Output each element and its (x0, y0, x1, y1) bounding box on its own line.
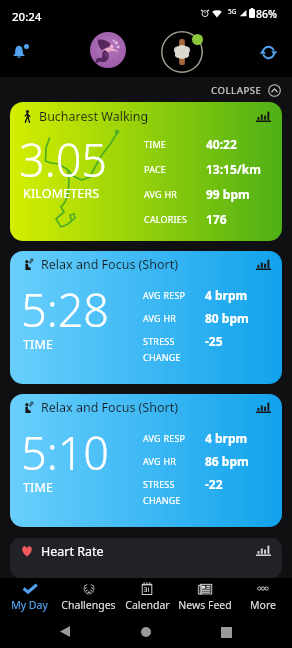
button[interactable]: More (234, 578, 292, 616)
staticText: KILOMETERS (23, 185, 100, 202)
staticText: AVG HR (143, 455, 177, 467)
staticText: 86% (256, 7, 277, 21)
staticText: More (250, 598, 276, 612)
button[interactable]: Profile avatar (90, 32, 126, 68)
other: Back (60, 626, 70, 637)
staticText: -25 (205, 333, 223, 349)
staticText: My Day (11, 598, 48, 612)
staticText: 5:10 (21, 422, 110, 483)
staticText: AVG HR (143, 312, 177, 324)
staticText: STRESS CHANGE (143, 335, 181, 364)
button[interactable]: COLLAPSE (211, 84, 281, 97)
staticText: 80 bpm (205, 310, 249, 326)
staticText: AVG RESP (143, 432, 186, 444)
staticText: 20:24 (12, 9, 42, 25)
button[interactable]: Sync (254, 38, 282, 66)
button[interactable]: Heart Rate (10, 538, 282, 578)
staticText: 176 (206, 211, 227, 227)
staticText: Bucharest Walking (39, 108, 149, 125)
staticText: TIME (144, 138, 167, 150)
staticText: AVG HR (144, 188, 178, 200)
staticText: 5G (228, 7, 237, 16)
staticText: COLLAPSE (211, 84, 262, 97)
staticText: PACE (144, 163, 167, 175)
button[interactable]: Challenges (59, 578, 118, 616)
staticText: Relax and Focus (Short) (41, 256, 178, 273)
other: Home (141, 627, 151, 637)
staticText: STRESS CHANGE (143, 478, 181, 507)
staticText: News Feed (178, 598, 232, 612)
staticText: Challenges (61, 598, 116, 612)
button[interactable]: My Day (0, 578, 59, 616)
staticText: 4 brpm (205, 287, 248, 303)
button[interactable]: Calendar (118, 578, 176, 616)
staticText: TIME (23, 479, 54, 496)
button[interactable]: Relax and Focus (Short) (10, 394, 282, 527)
staticText: 13:15/km (206, 161, 261, 177)
staticText: AVG RESP (143, 289, 186, 301)
staticText: 86 bpm (205, 453, 249, 469)
staticText: 5:28 (21, 279, 110, 340)
button[interactable]: Connected device (161, 31, 203, 73)
button[interactable]: Relax and Focus (Short) (10, 251, 282, 384)
button[interactable]: Bucharest Walking (10, 102, 282, 241)
staticText: TIME (23, 336, 54, 353)
staticText: Relax and Focus (Short) (41, 399, 178, 416)
staticText: 4 brpm (205, 430, 248, 446)
staticText: -22 (205, 476, 223, 492)
button[interactable]: News Feed (176, 578, 234, 616)
staticText: 3.05 (19, 129, 108, 190)
button[interactable]: Notifications (5, 33, 33, 61)
staticText: Calendar (125, 598, 170, 612)
staticText: 99 bpm (206, 186, 250, 202)
staticText: 40:22 (206, 136, 237, 152)
staticText: Heart Rate (41, 543, 104, 560)
staticText: CALORIES (144, 213, 188, 225)
